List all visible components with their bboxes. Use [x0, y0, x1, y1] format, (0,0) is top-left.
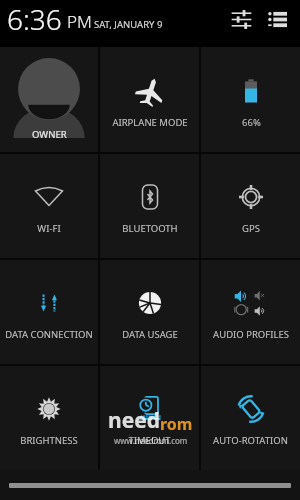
button[interactable]: DATA CONNECTION [0, 260, 98, 364]
staticText: TIMEOUT [128, 434, 171, 447]
button[interactable]: AIRPLANE MODE [100, 47, 199, 152]
button[interactable]: Quick settings [226, 4, 256, 34]
staticText: BRIGHTNESS [20, 434, 78, 447]
staticText: AUDIO PROFILES [213, 328, 289, 341]
button[interactable]: GPS [201, 154, 300, 258]
staticText: rom [160, 413, 193, 435]
button[interactable]: BLUETOOTH [100, 154, 199, 258]
staticText: AUTO-ROTATION [213, 434, 288, 447]
button[interactable]: 66% [201, 47, 300, 152]
button[interactable]: Drag handle [0, 470, 300, 500]
staticText: need [108, 406, 160, 435]
button[interactable]: BRIGHTNESS [0, 366, 98, 470]
staticText: GPS [242, 222, 260, 235]
staticText: www.needrom.com [114, 435, 188, 446]
staticText: SAT, JANUARY 9 [94, 18, 163, 31]
staticText: BLUETOOTH [122, 222, 178, 235]
button[interactable]: Notifications [263, 5, 291, 33]
staticText: OWNER [32, 128, 67, 141]
button[interactable]: OWNER [0, 47, 98, 152]
button[interactable]: TIMEOUT [100, 366, 199, 470]
staticText: DATA CONNECTION [5, 328, 93, 341]
button[interactable]: AUTO-ROTATION [201, 366, 300, 470]
button[interactable]: AUDIO PROFILES [201, 260, 300, 364]
staticText: 6:36 [7, 0, 62, 38]
staticText: DATA USAGE [122, 328, 178, 341]
button[interactable]: DATA USAGE [100, 260, 199, 364]
staticText: PM [67, 10, 92, 33]
staticText: WI-FI [37, 222, 61, 235]
button[interactable]: WI-FI [0, 154, 98, 258]
staticText: AIRPLANE MODE [112, 116, 188, 129]
staticText: 66% [242, 116, 261, 129]
